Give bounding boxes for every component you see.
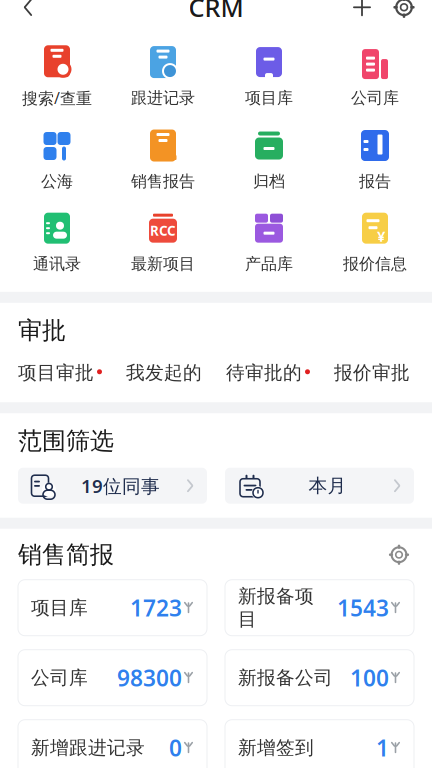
staticText: 0: [169, 733, 182, 763]
button[interactable]: RCC: [110, 209, 216, 276]
staticText: 项目库: [245, 88, 293, 108]
button[interactable]: 公海: [4, 126, 110, 193]
staticText: 归档: [253, 171, 285, 191]
staticText: RCC: [150, 222, 176, 239]
button[interactable]: Back: [6, 0, 50, 29]
button[interactable]: ¥: [322, 209, 428, 276]
staticText: 100: [350, 663, 389, 693]
button[interactable]: 销售报告: [110, 126, 216, 193]
button[interactable]: 待审批的: [216, 355, 320, 390]
button[interactable]: 新报备项目: [225, 580, 414, 636]
staticText: 我发起的: [126, 361, 202, 384]
button[interactable]: 新报备公司: [225, 650, 414, 706]
staticText: 销售简报: [18, 540, 114, 569]
staticText: 公海: [41, 171, 73, 191]
staticText: 本月: [309, 474, 347, 497]
staticText: 报价审批: [334, 361, 410, 384]
button[interactable]: Configure briefing: [384, 540, 414, 570]
staticText: 搜索/查重: [22, 87, 92, 108]
button[interactable]: 跟进记录: [110, 43, 216, 110]
button[interactable]: 项目审批: [8, 355, 112, 390]
button[interactable]: Settings: [382, 0, 426, 29]
staticText: 1723: [130, 593, 182, 623]
button[interactable]: 搜索/查重: [4, 42, 110, 110]
staticText: 公司库: [351, 88, 399, 108]
staticText: 新报备项目: [238, 585, 314, 631]
button[interactable]: 项目库: [18, 580, 207, 636]
staticText: 通讯录: [33, 254, 81, 274]
staticText: 报告: [359, 171, 391, 191]
button[interactable]: 本月: [225, 468, 414, 504]
staticText: 19位同事: [81, 473, 160, 498]
button[interactable]: 通讯录: [4, 209, 110, 276]
button[interactable]: 产品库: [216, 209, 322, 276]
button[interactable]: 新增跟进记录: [18, 720, 207, 768]
staticText: 新报备公司: [238, 666, 333, 689]
staticText: 审批: [18, 316, 66, 345]
staticText: 最新项目: [131, 254, 195, 274]
button[interactable]: 项目库: [216, 43, 322, 110]
staticText: 项目审批: [18, 361, 94, 384]
staticText: 公司库: [31, 666, 88, 689]
staticText: 跟进记录: [131, 88, 195, 108]
staticText: 范围筛选: [18, 426, 114, 456]
button[interactable]: 新增签到: [225, 720, 414, 768]
button[interactable]: 报告: [322, 126, 428, 193]
staticText: 销售报告: [131, 171, 195, 191]
staticText: 报价信息: [343, 254, 407, 274]
staticText: 新增跟进记录: [31, 736, 145, 759]
staticText: 项目库: [31, 596, 88, 619]
button[interactable]: 我发起的: [112, 355, 216, 390]
button[interactable]: 归档: [216, 126, 322, 193]
button[interactable]: 19位同事: [18, 468, 207, 504]
button[interactable]: 报价审批: [320, 355, 424, 390]
button[interactable]: Add: [342, 0, 382, 29]
button[interactable]: 公司库: [18, 650, 207, 706]
staticText: 1543: [337, 593, 389, 623]
button[interactable]: 公司库: [322, 43, 428, 110]
staticText: ¥: [377, 226, 385, 246]
staticText: 1: [376, 733, 389, 763]
staticText: 待审批的: [226, 361, 302, 384]
staticText: 产品库: [245, 254, 293, 274]
staticText: 98300: [117, 663, 182, 693]
staticText: 新增签到: [238, 736, 314, 759]
staticText: CRM: [188, 0, 243, 24]
